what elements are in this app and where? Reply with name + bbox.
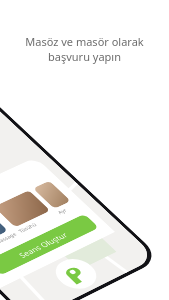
staticText: Tüsühü — [17, 222, 38, 234]
staticText: Seans Oluştur — [16, 230, 70, 259]
staticText: Swedish Massage — [0, 231, 18, 255]
staticText: Masöz ve masör olarak başvuru yapın — [0, 34, 169, 64]
other: Konum — [47, 254, 105, 294]
button[interactable]: Seans Oluştur — [0, 214, 99, 276]
staticText: Ayr — [56, 207, 69, 216]
